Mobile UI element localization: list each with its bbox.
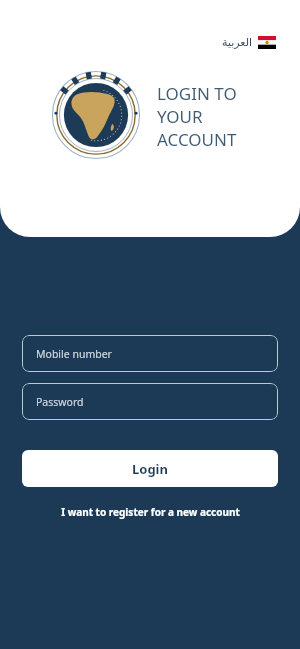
button[interactable]: Password: [22, 383, 278, 420]
staticText: العربية: [222, 36, 253, 49]
staticText: YOUR: [157, 105, 203, 128]
button[interactable]: I want to register for a new account: [22, 501, 278, 523]
button[interactable]: Login: [22, 450, 278, 487]
staticText: LOGIN TO: [157, 82, 237, 105]
other: Change language: [258, 36, 276, 49]
staticText: I want to register for a new account: [61, 505, 240, 519]
staticText: Password: [36, 395, 84, 409]
button[interactable]: العربية: [218, 33, 280, 52]
staticText: Mobile number: [36, 347, 112, 361]
button[interactable]: Mobile number: [22, 335, 278, 372]
staticText: ACCOUNT: [157, 128, 237, 151]
staticText: Login: [132, 460, 168, 478]
